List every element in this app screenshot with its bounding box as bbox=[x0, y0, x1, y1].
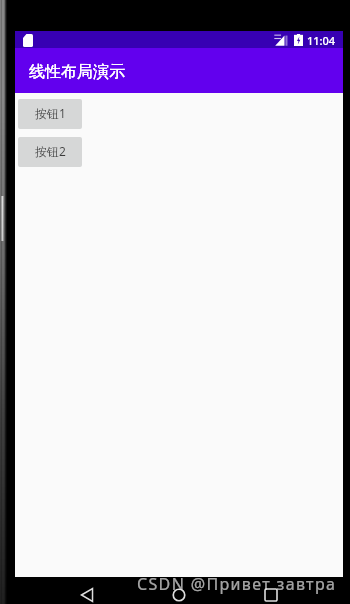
button[interactable]: Home bbox=[164, 585, 194, 604]
staticText: 按钮1 bbox=[35, 105, 66, 121]
staticText: 11:04 bbox=[307, 33, 336, 48]
staticText: 线性布局演示 bbox=[29, 62, 125, 82]
staticText: CSDN @Привет завтра bbox=[137, 573, 337, 595]
button[interactable]: 按钮1 bbox=[18, 99, 82, 129]
staticText: 按钮2 bbox=[35, 143, 66, 159]
button[interactable]: Recent apps bbox=[256, 585, 286, 604]
staticText: 线性布局演示 bbox=[29, 62, 125, 82]
button[interactable]: 按钮2 bbox=[18, 137, 82, 167]
button[interactable]: Back bbox=[72, 585, 102, 604]
